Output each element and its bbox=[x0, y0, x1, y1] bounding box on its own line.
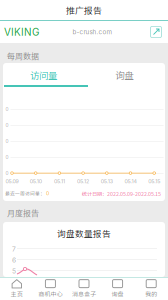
staticText: 0 bbox=[5, 170, 8, 176]
staticText: 05.11 bbox=[54, 178, 65, 184]
staticText: 5 bbox=[12, 267, 16, 275]
staticText: 05.09 bbox=[5, 178, 18, 184]
staticText: 最近一周访问量： bbox=[5, 190, 45, 197]
staticText: VIKING bbox=[4, 26, 39, 38]
staticText: 询盘 bbox=[112, 290, 124, 298]
button[interactable]: Open site bbox=[150, 26, 162, 38]
staticText: 访问量 bbox=[30, 68, 57, 82]
button[interactable]: 询盘 bbox=[84, 63, 165, 87]
staticText: 0 bbox=[46, 190, 49, 196]
staticText: 月度报告 bbox=[7, 207, 39, 219]
staticText: 6 bbox=[12, 256, 16, 264]
staticText: 询盘 bbox=[115, 68, 133, 82]
staticText: 0 bbox=[5, 106, 8, 112]
staticText: 推广报告 bbox=[66, 4, 102, 16]
staticText: 0 bbox=[5, 138, 8, 144]
button[interactable]: 询盘 bbox=[101, 277, 134, 300]
button[interactable]: 访问量 bbox=[3, 63, 84, 87]
staticText: 我的 bbox=[145, 290, 157, 298]
staticText: 统计日期：2022.05.09-2022.05.15 bbox=[82, 190, 161, 197]
staticText: 05.12 bbox=[77, 178, 89, 184]
button[interactable]: 主页 bbox=[0, 277, 34, 300]
staticText: 7 bbox=[12, 245, 16, 253]
staticText: 05.15 bbox=[148, 178, 160, 184]
staticText: 询盘数量报告 bbox=[57, 227, 111, 239]
staticText: 商机中心 bbox=[38, 290, 62, 298]
staticText: 05.14 bbox=[124, 178, 136, 184]
staticText: 消息盒子 bbox=[72, 290, 96, 298]
staticText: 每周数据 bbox=[7, 50, 39, 62]
button[interactable]: 商机中心 bbox=[34, 277, 67, 300]
button[interactable]: 我的 bbox=[134, 277, 168, 300]
staticText: 0 bbox=[5, 154, 8, 160]
button[interactable]: 消息盒子 bbox=[67, 277, 101, 300]
staticText: 0 bbox=[5, 122, 8, 128]
staticText: b-crush.com bbox=[72, 28, 111, 36]
staticText: 05.10 bbox=[30, 178, 42, 184]
staticText: 05.13 bbox=[101, 178, 113, 184]
staticText: 主页 bbox=[11, 290, 23, 298]
